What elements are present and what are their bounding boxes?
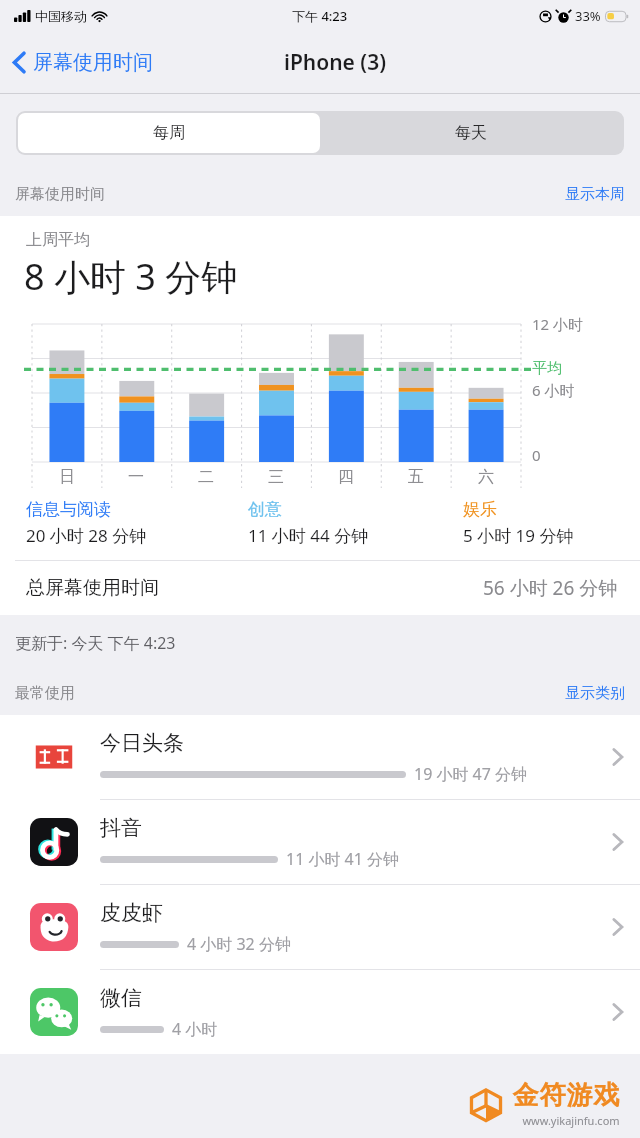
staticText: 一: [128, 467, 144, 487]
staticText: 抖音: [100, 815, 142, 841]
other: 打开 今日头条 详情: [594, 715, 640, 799]
staticText: 金符游戏: [512, 1079, 620, 1112]
staticText: 19 小时 47 分钟: [414, 763, 528, 785]
staticText: 每周: [153, 123, 185, 143]
staticText: 4 小时 32 分钟: [187, 933, 291, 955]
staticText: 11 小时 41 分钟: [286, 848, 400, 870]
button[interactable]: 创意: [248, 499, 463, 547]
staticText: www.yikajinfu.com: [512, 1113, 630, 1128]
staticText: 更新于: 今天 下午 4:23: [15, 632, 176, 654]
staticText: 创意: [248, 499, 282, 520]
staticText: 8 小时 3 分钟: [24, 252, 238, 301]
button[interactable]: 每天: [320, 113, 622, 153]
button[interactable]: 每周: [18, 113, 320, 153]
other: 打开 微信 详情: [594, 970, 640, 1054]
staticText: 0: [532, 445, 541, 461]
staticText: 二: [198, 467, 214, 487]
staticText: 下午 4:23: [292, 7, 348, 25]
staticText: 五: [408, 467, 424, 487]
staticText: 6 小时: [532, 380, 575, 400]
button[interactable]: 皮皮虾: [0, 885, 640, 970]
staticText: 平均: [532, 359, 562, 378]
staticText: 中国移动: [35, 8, 87, 24]
staticText: 微信: [100, 985, 142, 1011]
other: 打开 抖音 详情: [594, 800, 640, 884]
button[interactable]: 抖音: [0, 800, 640, 885]
staticText: 三: [268, 467, 284, 487]
staticText: 上周平均: [26, 230, 90, 250]
staticText: 总屏幕使用时间: [26, 576, 159, 600]
staticText: 六: [478, 467, 494, 487]
staticText: 33%: [575, 7, 601, 25]
staticText: 屏幕使用时间: [15, 185, 105, 204]
staticText: 日: [59, 467, 75, 487]
staticText: 最常使用: [15, 684, 75, 703]
button[interactable]: 今日头条: [0, 715, 640, 800]
button[interactable]: 娱乐: [463, 499, 624, 547]
button[interactable]: 显示本周: [555, 185, 640, 204]
staticText: iPhone (3): [284, 48, 386, 77]
staticText: 56 小时 26 分钟: [483, 575, 618, 601]
staticText: 20 小时 28 分钟: [26, 524, 147, 547]
staticText: 皮皮虾: [100, 900, 163, 926]
button[interactable]: 总屏幕使用时间: [0, 561, 640, 615]
staticText: 屏幕使用时间: [33, 50, 153, 75]
button[interactable]: 信息与阅读: [26, 499, 248, 547]
staticText: 每天: [455, 123, 487, 143]
button[interactable]: 微信: [0, 970, 640, 1054]
staticText: 今日头条: [100, 730, 184, 756]
button[interactable]: 屏幕使用时间: [0, 42, 163, 83]
button[interactable]: 显示类别: [555, 684, 640, 703]
staticText: 4 小时: [172, 1018, 218, 1040]
staticText: 四: [338, 467, 354, 487]
staticText: 11 小时 44 分钟: [248, 524, 369, 547]
staticText: 12 小时: [532, 314, 584, 334]
other: 打开 皮皮虾 详情: [594, 885, 640, 969]
staticText: 信息与阅读: [26, 499, 111, 520]
staticText: 娱乐: [463, 499, 497, 520]
staticText: 5 小时 19 分钟: [463, 524, 574, 547]
